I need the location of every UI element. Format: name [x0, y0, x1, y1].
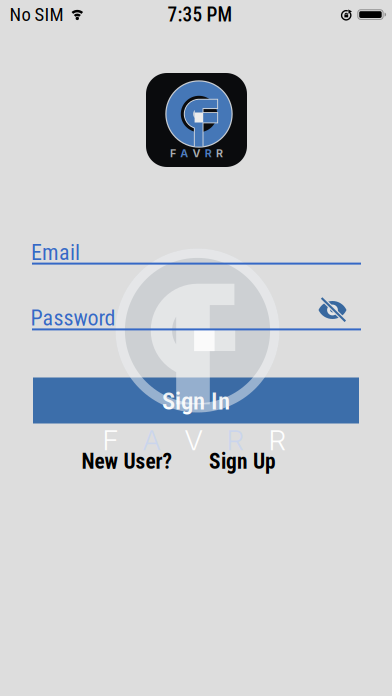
staticText: Sign In — [162, 386, 230, 415]
staticText: R — [205, 147, 212, 160]
staticText: R — [268, 423, 286, 456]
button[interactable]: Sign In — [33, 377, 359, 423]
button[interactable]: Sign Up — [209, 449, 276, 474]
staticText: New User? — [81, 449, 172, 474]
staticText: Email — [31, 240, 80, 265]
button[interactable]: Show password — [318, 299, 347, 321]
staticText: A — [180, 147, 188, 160]
staticText: R — [226, 423, 244, 456]
staticText: F — [102, 423, 118, 456]
staticText: Sign Up — [209, 449, 276, 474]
staticText: V — [192, 147, 200, 160]
button[interactable]: Password — [32, 308, 361, 331]
button[interactable]: Email — [32, 243, 361, 266]
staticText: F — [170, 147, 176, 160]
staticText: Password — [30, 305, 115, 331]
button[interactable]: New User? — [81, 449, 172, 474]
staticText: V — [184, 423, 202, 456]
staticText: A — [142, 423, 160, 456]
staticText: No SIM — [9, 4, 63, 26]
staticText: R — [216, 147, 223, 160]
staticText: 7:35 PM — [167, 4, 232, 26]
